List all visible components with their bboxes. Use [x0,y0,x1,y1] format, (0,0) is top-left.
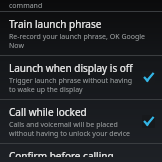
staticText: Launch when display is off [9,61,133,75]
button[interactable]: Toggle setting [142,71,155,84]
staticText: Call while locked [9,105,87,119]
button[interactable]: command [0,0,162,11]
staticText: Trigger launch phrase without having to … [9,76,137,94]
staticText: Train launch phrase [9,17,102,31]
button[interactable]: Confirm before calling [0,144,162,162]
staticText: Calls and voicemail will be placed witho… [9,120,137,138]
staticText: Re-record your launch phrase, OK Google … [9,32,155,50]
button[interactable]: Call while locked [0,100,162,143]
button[interactable]: Toggle setting [142,115,155,128]
staticText: Confirm before calling [9,149,114,157]
button[interactable]: Train launch phrase [0,12,162,55]
button[interactable]: Launch when display is off [0,56,162,99]
staticText: command [9,1,43,11]
